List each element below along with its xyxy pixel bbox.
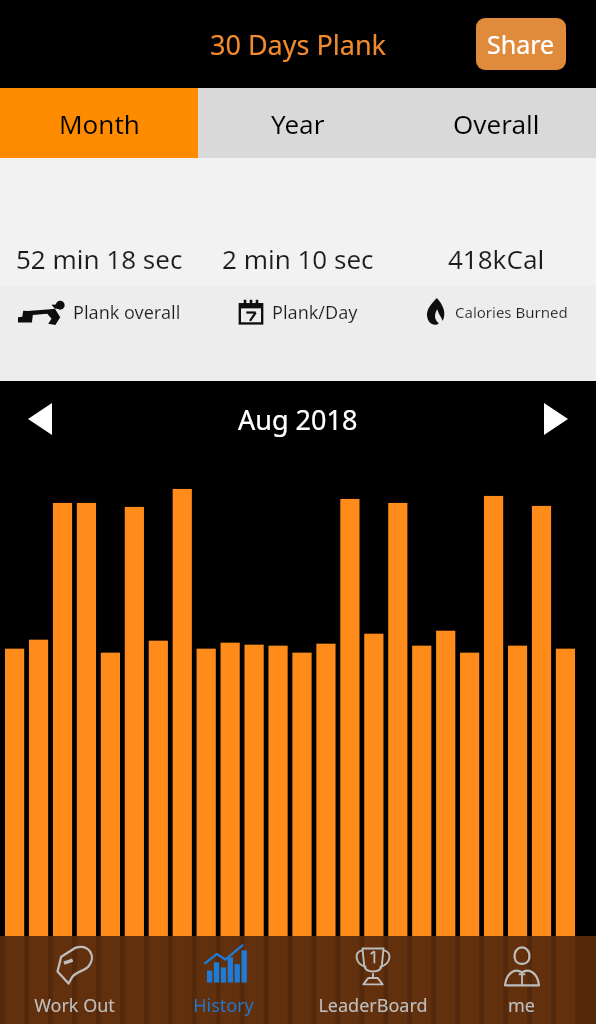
staticText: Month bbox=[59, 106, 140, 141]
staticText: me bbox=[508, 993, 535, 1018]
button[interactable]: me bbox=[447, 936, 596, 1024]
button[interactable]: Next month bbox=[532, 395, 580, 443]
staticText: Year bbox=[271, 106, 325, 141]
staticText: 2 min 10 sec bbox=[222, 241, 374, 276]
staticText: 52 min 18 sec bbox=[16, 241, 183, 276]
staticText: Share bbox=[487, 27, 555, 61]
staticText: Aug 2018 bbox=[238, 401, 358, 438]
button[interactable]: Work Out bbox=[0, 936, 149, 1024]
button[interactable]: Previous month bbox=[16, 395, 64, 443]
staticText: Work Out bbox=[34, 993, 115, 1018]
staticText: 418kCal bbox=[448, 241, 545, 276]
staticText: Plank/Day bbox=[272, 300, 358, 325]
staticText: Overall bbox=[453, 106, 540, 141]
button[interactable]: Share bbox=[476, 18, 566, 70]
button[interactable]: LeaderBoard bbox=[298, 936, 447, 1024]
staticText: Plank overall bbox=[73, 300, 181, 325]
staticText: History bbox=[193, 993, 254, 1018]
button[interactable]: Year bbox=[198, 88, 397, 158]
staticText: Calories Burned bbox=[455, 302, 568, 322]
button[interactable]: Overall bbox=[397, 88, 596, 158]
staticText: LeaderBoard bbox=[318, 993, 428, 1018]
button[interactable]: History bbox=[149, 936, 298, 1024]
staticText: 30 Days Plank bbox=[210, 26, 387, 63]
button[interactable]: Month bbox=[0, 88, 198, 158]
